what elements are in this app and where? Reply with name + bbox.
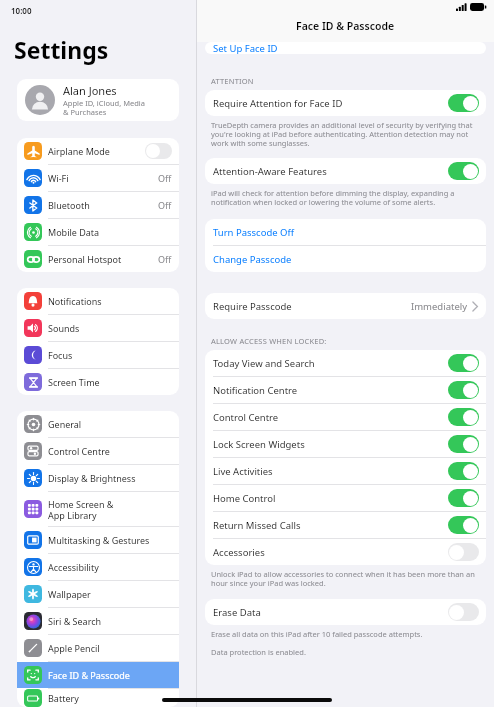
button[interactable]: Toggle [448,489,479,507]
staticText: Battery [48,692,172,704]
staticText: Data protection is enabled. [211,647,306,657]
staticText: Accessories [213,546,448,559]
button[interactable]: Control Centre [205,404,486,430]
staticText: Turn Passcode Off [213,226,295,239]
staticText: Require Passcode [213,300,411,313]
staticText: Notifications [48,295,172,307]
staticText: Home Control [213,492,448,505]
button[interactable]: Set Up Face ID [205,42,486,54]
staticText: iPad will check for attention before dim… [211,188,478,208]
button[interactable]: Toggle [448,435,479,453]
staticText: Display & Brightness [48,472,172,484]
button[interactable]: Toggle [145,143,172,159]
staticText: Face ID & Passcode [296,19,395,33]
staticText: Airplane Mode [48,145,145,157]
staticText: Erase Data [213,606,448,619]
button[interactable]: Siri & Search [17,608,179,634]
staticText: Control Centre [48,445,172,457]
staticText: Live Activities [213,465,448,478]
button[interactable]: Home Control [205,485,486,511]
button[interactable]: Display & Brightness [17,465,179,491]
staticText: ALLOW ACCESS WHEN LOCKED: [211,336,327,346]
staticText: Settings [14,34,109,65]
staticText: Notification Centre [213,384,448,397]
staticText: Accessibility [48,561,172,573]
staticText: Sounds [48,322,172,334]
staticText: Return Missed Calls [213,519,448,532]
button[interactable]: Change Passcode [205,246,486,272]
button[interactable]: Erase Data [205,599,486,625]
button[interactable]: Multitasking & Gestures [17,527,179,553]
staticText: Wi-Fi [48,172,158,184]
button[interactable]: Live Activities [205,458,486,484]
button[interactable]: Battery [17,689,179,707]
button[interactable]: Require Passcode [205,293,486,319]
button[interactable]: Return Missed Calls [205,512,486,538]
staticText: Set Up Face ID [213,42,278,54]
button[interactable]: Apple Pencil [17,635,179,661]
staticText: Unlock iPad to allow accessories to conn… [211,569,478,589]
button[interactable]: Toggle [448,381,479,399]
button[interactable]: Alan Jones [17,79,179,121]
button[interactable]: Wi-Fi [17,165,179,191]
button[interactable]: Focus [17,342,179,368]
button[interactable]: Lock Screen Widgets [205,431,486,457]
staticText: Focus [48,349,172,361]
staticText: Control Centre [213,411,448,424]
button[interactable]: Turn Passcode Off [205,219,486,245]
button[interactable]: General [17,411,179,437]
staticText: Erase all data on this iPad after 10 fai… [211,629,423,639]
button[interactable]: Toggle [448,516,479,534]
button[interactable]: Home Screen & App Library [17,492,179,526]
staticText: Mobile Data [48,226,172,238]
button[interactable]: Mobile Data [17,219,179,245]
button[interactable]: Wallpaper [17,581,179,607]
staticText: Personal Hotspot [48,253,158,265]
staticText: Attention-Aware Features [213,165,448,178]
button[interactable]: Accessories [205,539,486,565]
staticText: TrueDepth camera provides an additional … [211,120,478,149]
staticText: 10:00 [11,5,32,16]
button[interactable]: Sounds [17,315,179,341]
button[interactable]: Toggle [448,354,479,372]
button[interactable]: Control Centre [17,438,179,464]
staticText: Immediately [411,300,468,313]
button[interactable]: Face ID & Passcode [17,662,179,688]
staticText: Alan Jones [63,83,117,98]
button[interactable]: Toggle [448,162,479,180]
button[interactable]: Airplane Mode [17,138,179,164]
staticText: Apple ID, iCloud, Media & Purchases [63,98,145,118]
button[interactable]: Bluetooth [17,192,179,218]
button[interactable]: Today View and Search [205,350,486,376]
staticText: Off [158,172,172,184]
button[interactable]: Toggle [448,543,479,561]
button[interactable]: Screen Time [17,369,179,395]
staticText: General [48,418,172,430]
staticText: Multitasking & Gestures [48,534,172,546]
button[interactable]: Toggle [448,408,479,426]
button[interactable]: Notifications [17,288,179,314]
staticText: Apple Pencil [48,642,172,654]
staticText: Bluetooth [48,199,158,211]
button[interactable]: Toggle [448,462,479,480]
staticText: Off [158,199,172,211]
staticText: Require Attention for Face ID [213,97,448,110]
staticText: ATTENTION [211,76,254,86]
staticText: Lock Screen Widgets [213,438,448,451]
staticText: Home Screen & App Library [48,498,172,521]
button[interactable]: Attention-Aware Features [205,158,486,184]
staticText: Wallpaper [48,588,172,600]
staticText: Today View and Search [213,357,448,370]
staticText: Siri & Search [48,615,172,627]
button[interactable]: Toggle [448,94,479,112]
staticText: Face ID & Passcode [48,669,172,681]
button[interactable]: Require Attention for Face ID [205,90,486,116]
button[interactable]: Notification Centre [205,377,486,403]
staticText: Change Passcode [213,253,292,266]
staticText: Screen Time [48,376,172,388]
staticText: Off [158,253,172,265]
button[interactable]: Personal Hotspot [17,246,179,272]
button[interactable]: Accessibility [17,554,179,580]
button[interactable]: Toggle [448,603,479,621]
